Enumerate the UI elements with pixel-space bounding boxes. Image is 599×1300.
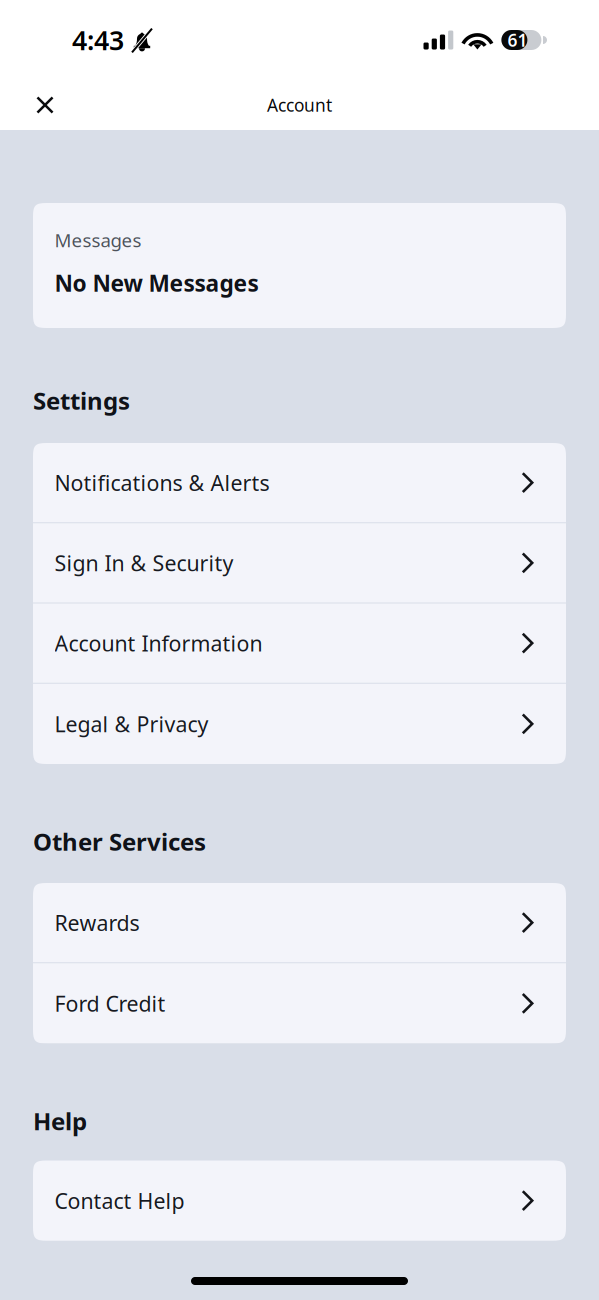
button[interactable]: Legal & Privacy <box>33 684 566 764</box>
staticText: Messages <box>54 228 141 252</box>
staticText: Legal & Privacy <box>54 710 208 738</box>
button[interactable]: Contact Help <box>33 1160 566 1241</box>
staticText: Rewards <box>54 908 139 937</box>
staticText: Account Information <box>54 629 262 657</box>
staticText: Other Services <box>33 826 206 857</box>
button[interactable]: Rewards <box>33 883 566 963</box>
staticText: Sign In & Security <box>54 549 233 577</box>
staticText: Notifications & Alerts <box>54 468 269 497</box>
staticText: 61 <box>507 28 527 51</box>
staticText: Help <box>33 1105 87 1137</box>
staticText: 4:43 <box>72 22 124 58</box>
staticText: Contact Help <box>54 1186 184 1215</box>
button[interactable]: Notifications & Alerts <box>33 443 566 523</box>
staticText: Settings <box>33 385 130 416</box>
staticText: No New Messages <box>54 268 258 298</box>
button[interactable]: Sign In & Security <box>33 523 566 603</box>
staticText: Ford Credit <box>54 989 165 1017</box>
button[interactable]: Ford Credit <box>33 963 566 1043</box>
staticText: Account <box>267 93 332 116</box>
button[interactable]: Messages <box>33 203 566 328</box>
button[interactable]: Account Information <box>33 603 566 684</box>
button[interactable]: Close <box>19 78 71 132</box>
